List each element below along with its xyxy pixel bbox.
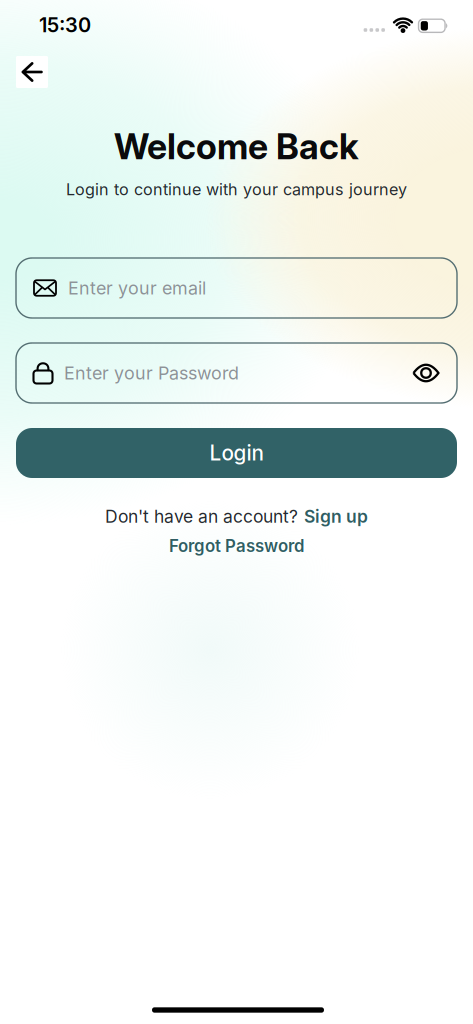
staticText: Login to continue with your campus journ… (66, 180, 407, 199)
staticText: Welcome Back (114, 126, 359, 167)
button[interactable]: Show password (413, 363, 439, 383)
button[interactable]: Login (16, 428, 457, 478)
staticText: Enter your email (68, 277, 206, 299)
button[interactable]: Sign up (304, 506, 368, 527)
button[interactable]: Back (16, 56, 48, 88)
staticText: Don't have an account? (105, 506, 298, 527)
staticText: Forgot Password (169, 536, 304, 556)
staticText: Enter your Password (64, 362, 239, 384)
staticText: Login (209, 441, 263, 465)
button[interactable]: Forgot Password (169, 536, 304, 556)
staticText: 15:30 (39, 13, 91, 37)
staticText: Sign up (304, 506, 368, 527)
